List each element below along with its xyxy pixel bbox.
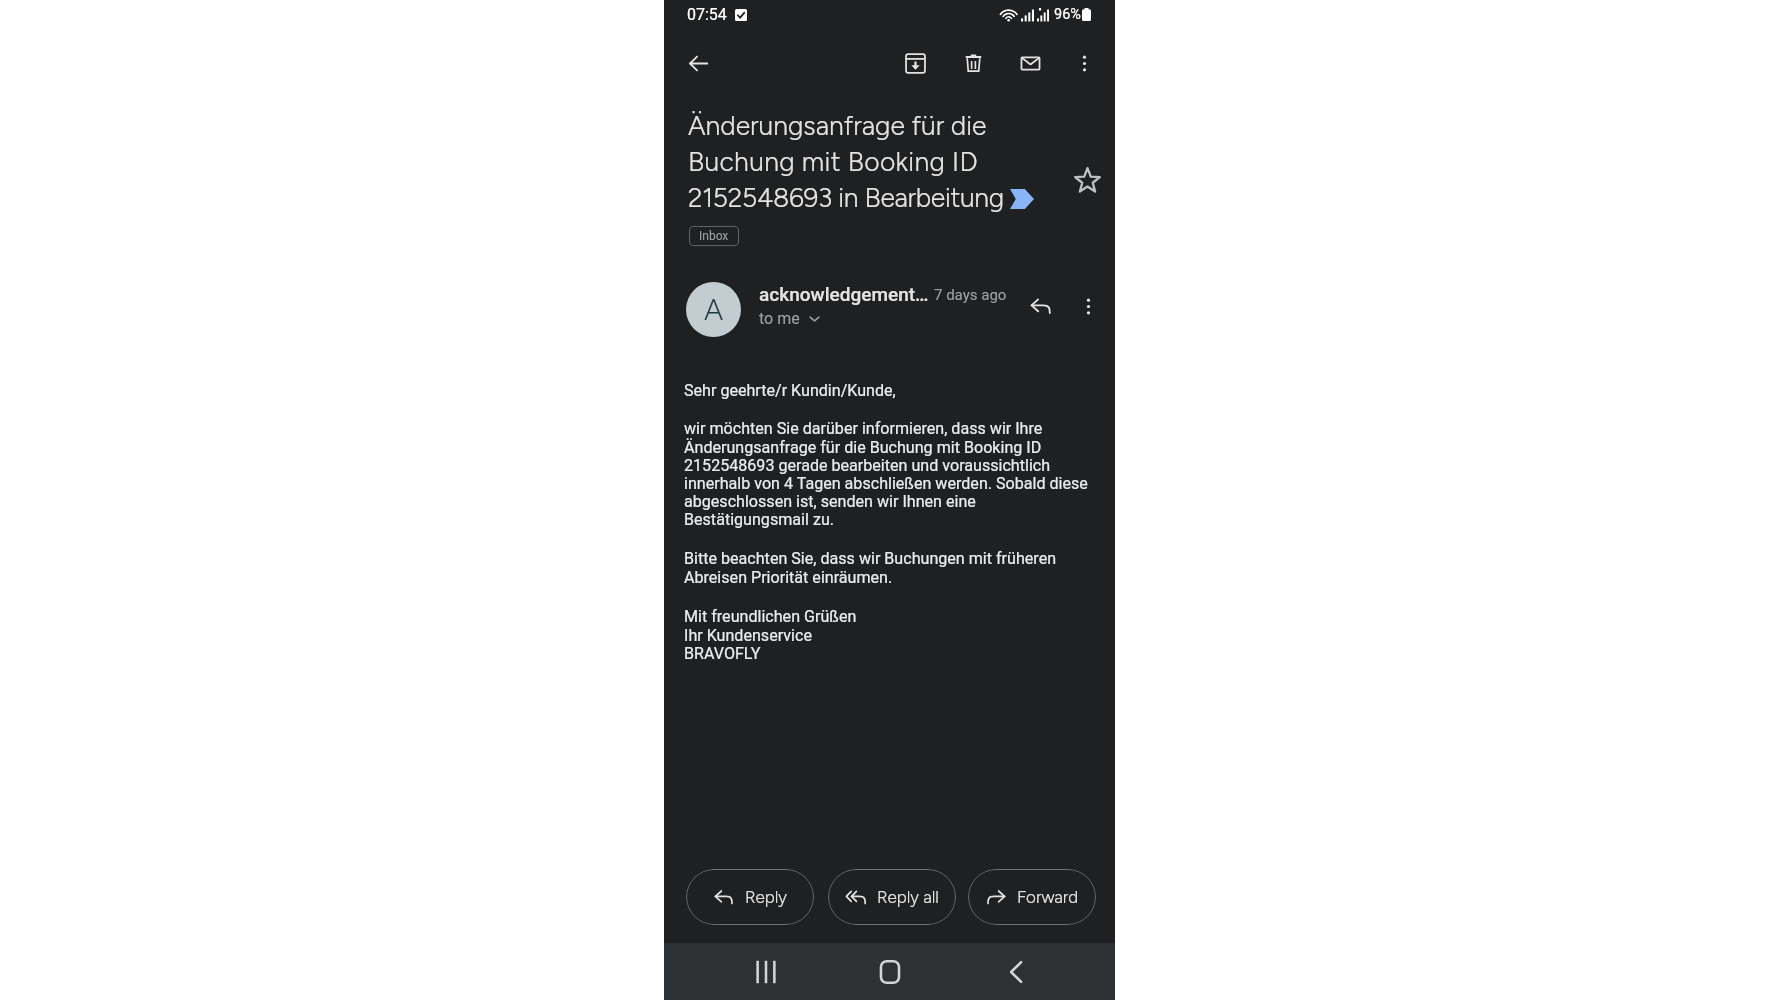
- staticText: acknowledgement…: [759, 283, 929, 305]
- button[interactable]: to me: [759, 309, 821, 328]
- button[interactable]: Home: [866, 943, 914, 1000]
- staticText: Sehr geehrte/r Kundin/Kunde,: [684, 381, 896, 400]
- button[interactable]: Archive: [895, 43, 935, 83]
- staticText: 07:54: [687, 5, 727, 24]
- staticText: to me: [759, 309, 800, 328]
- button[interactable]: Forward: [968, 869, 1096, 925]
- button[interactable]: Back: [678, 43, 718, 83]
- button[interactable]: More options: [1064, 43, 1104, 83]
- staticText: Inbox: [699, 229, 729, 243]
- staticText: 2152548693 in Bearbeitung: [688, 182, 1004, 214]
- button[interactable]: Reply: [1021, 286, 1061, 326]
- staticText: Änderungsanfrage für die: [688, 110, 987, 142]
- staticText: A: [704, 292, 724, 327]
- staticText: Bitte beachten Sie, dass wir Buchungen m…: [684, 549, 1057, 587]
- button[interactable]: More options: [1068, 286, 1108, 326]
- button[interactable]: A: [686, 282, 741, 337]
- button[interactable]: Inbox: [689, 226, 739, 246]
- staticText: Reply: [745, 887, 787, 907]
- button[interactable]: Star: [1067, 160, 1107, 200]
- staticText: Mit freundlichen Grüßen Ihr Kundenservic…: [684, 607, 857, 663]
- staticText: wir möchten Sie darüber informieren, das…: [684, 419, 1088, 529]
- button[interactable]: Delete: [953, 43, 993, 83]
- staticText: Reply all: [877, 887, 939, 907]
- button[interactable]: Reply all: [828, 869, 956, 925]
- button[interactable]: Recent apps: [742, 943, 790, 1000]
- button[interactable]: Reply: [686, 869, 814, 925]
- button[interactable]: Back: [993, 943, 1041, 1000]
- button[interactable]: Mark as unread: [1010, 43, 1050, 83]
- staticText: 7 days ago: [934, 286, 1007, 304]
- staticText: Buchung mit Booking ID: [688, 146, 978, 178]
- staticText: 96%: [1054, 6, 1081, 23]
- staticText: Forward: [1017, 887, 1079, 907]
